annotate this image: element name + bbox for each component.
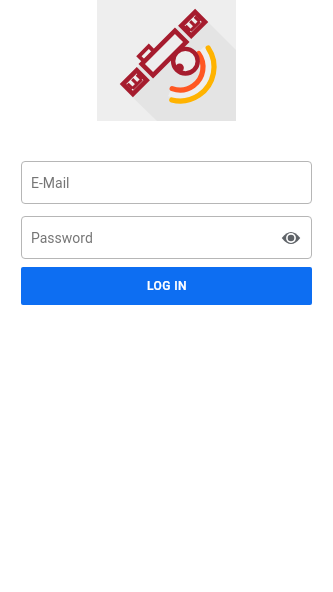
staticText: E-Mail [31, 175, 70, 191]
staticText: LOG IN [147, 279, 187, 293]
button[interactable]: E-Mail [21, 161, 312, 204]
staticText: Password [31, 230, 280, 246]
button[interactable]: LOG IN [21, 267, 312, 305]
button[interactable] [280, 227, 302, 249]
button[interactable]: Password [21, 216, 312, 259]
